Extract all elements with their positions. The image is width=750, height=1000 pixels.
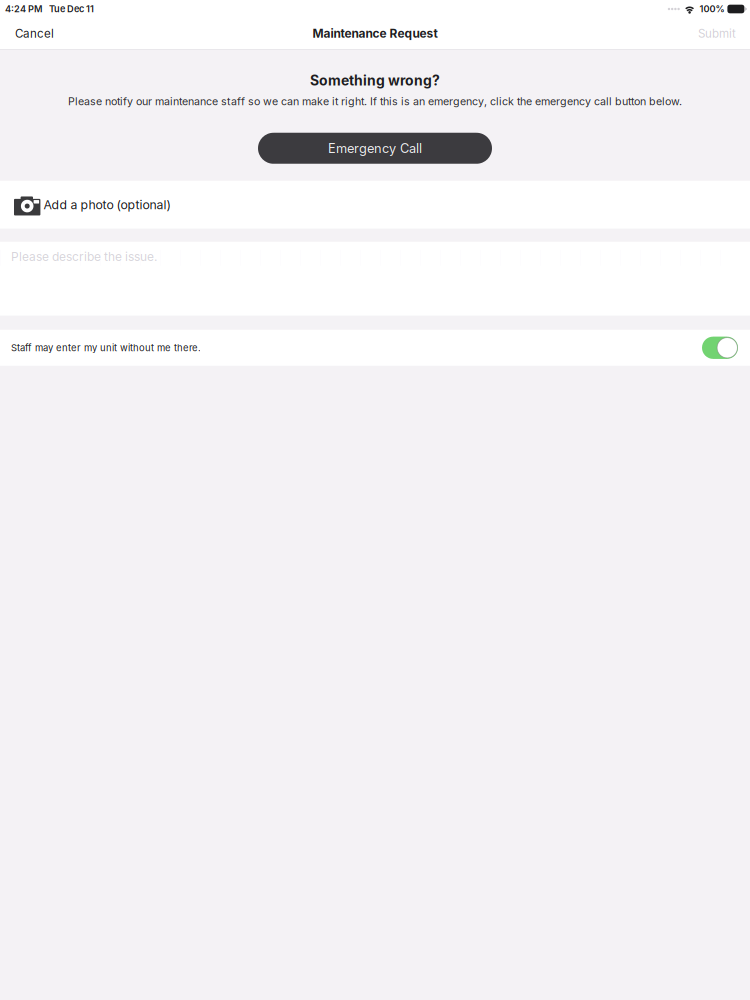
button[interactable]: Emergency Call [258, 133, 492, 164]
staticText: Add a photo (optional) [43, 197, 170, 212]
staticText: Staff may enter my unit without me there… [11, 342, 201, 353]
staticText: 100% [699, 3, 724, 14]
button[interactable]: Submit [686, 18, 750, 49]
staticText: Tue Dec 11 [49, 3, 94, 14]
staticText: Emergency Call [328, 140, 422, 156]
button[interactable]: Cancel [0, 18, 66, 49]
staticText: 4:24 PM [5, 3, 42, 14]
staticText: Maintenance Request [312, 26, 437, 41]
staticText: Something wrong? [310, 72, 440, 89]
staticText: Cancel [15, 26, 54, 40]
button[interactable]: Staff may enter my unit without me there… [0, 330, 750, 366]
button[interactable]: Please describe the issue. [0, 242, 750, 316]
staticText: Please describe the issue. [11, 249, 157, 264]
button[interactable]: Add a photo (optional) [0, 181, 750, 229]
staticText: Please notify our maintenance staff so w… [68, 95, 682, 108]
staticText: Submit [698, 26, 736, 40]
